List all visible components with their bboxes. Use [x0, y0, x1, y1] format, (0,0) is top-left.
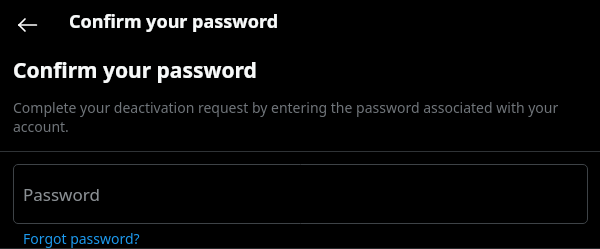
staticText: Confirm your password — [69, 9, 279, 34]
staticText: Password — [23, 183, 100, 206]
button[interactable]: Forgot password? — [23, 229, 140, 248]
staticText: Complete your deactivation request by en… — [13, 98, 590, 136]
button[interactable]: Password — [13, 164, 588, 224]
button[interactable]: Back — [8, 6, 46, 44]
staticText: Confirm your password — [13, 56, 257, 85]
staticText: Forgot password? — [23, 229, 140, 248]
